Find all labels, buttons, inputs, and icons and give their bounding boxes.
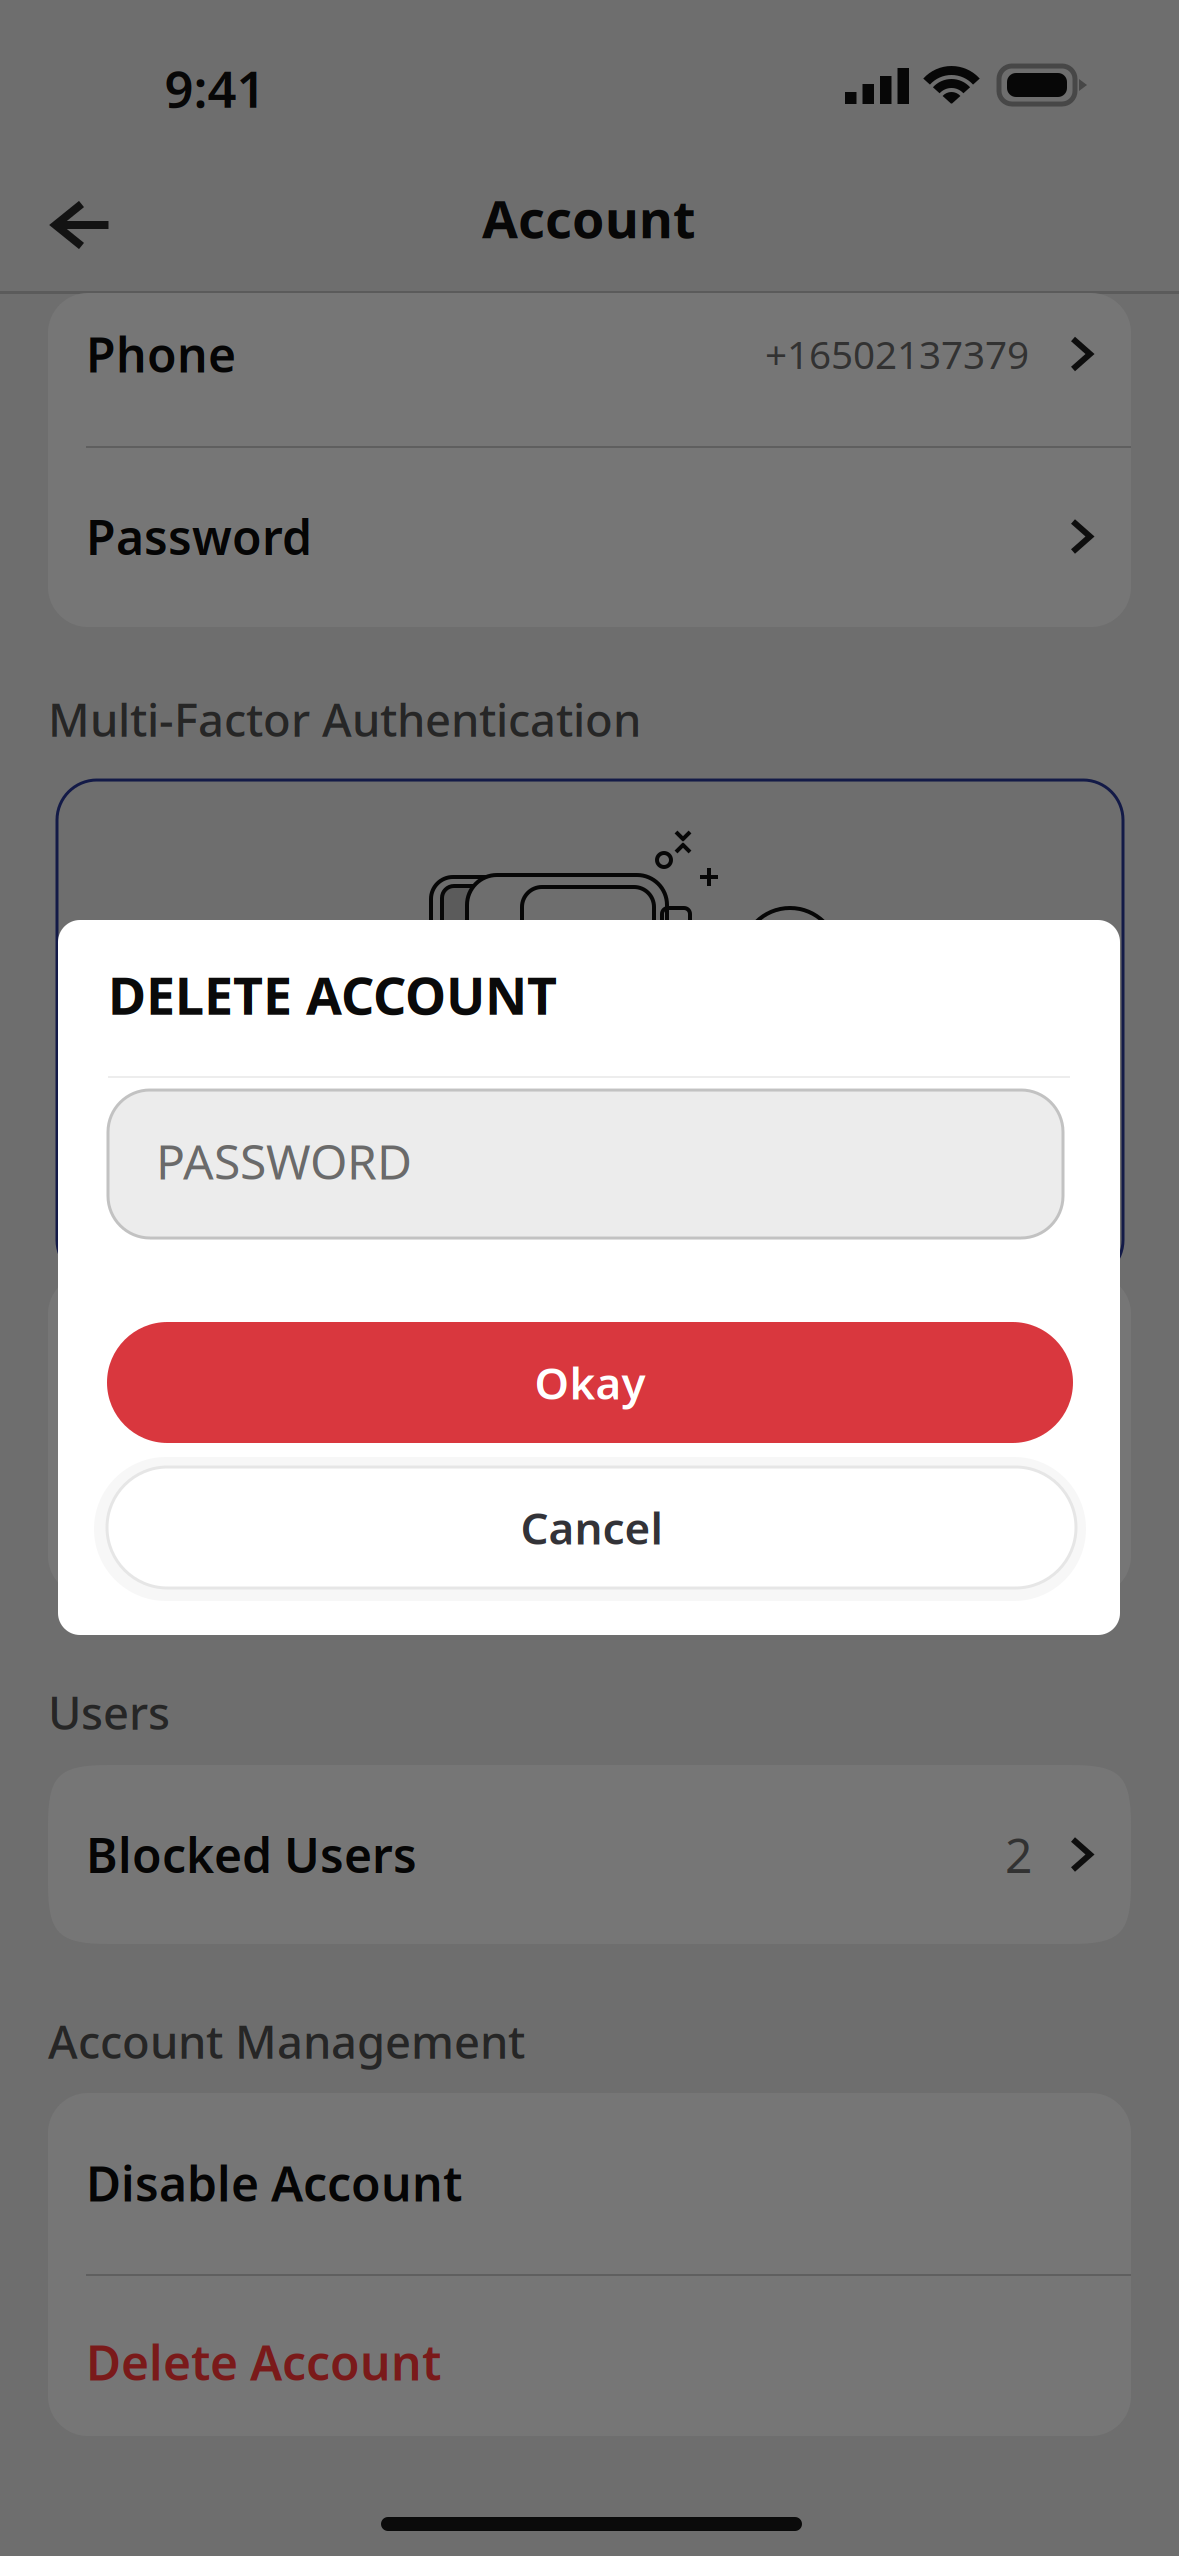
staticText: +16502137379 — [765, 328, 1029, 380]
staticText: Cancel — [520, 1498, 662, 1557]
staticText: Okay — [534, 1353, 645, 1412]
staticText: Account Management — [48, 2011, 525, 2071]
staticText: PASSWORD — [156, 1129, 412, 1193]
button[interactable]: Cancel — [94, 1457, 1086, 1601]
staticText: Account — [482, 183, 696, 253]
staticText: 2 — [1005, 1823, 1032, 1886]
staticText: Users — [48, 1682, 170, 1742]
staticText: Phone — [86, 322, 236, 386]
staticText: Multi-Factor Authentication — [48, 689, 641, 749]
staticText: 9:41 — [164, 54, 265, 122]
staticText: Blocked Users — [86, 1823, 417, 1886]
button[interactable]: Okay — [107, 1322, 1073, 1443]
button[interactable]: Back — [27, 170, 137, 280]
staticText: Delete Account — [86, 2330, 441, 2394]
staticText: Password — [86, 505, 312, 568]
staticText: DELETE ACCOUNT — [108, 960, 557, 1029]
staticText: Disable Account — [86, 2151, 462, 2215]
